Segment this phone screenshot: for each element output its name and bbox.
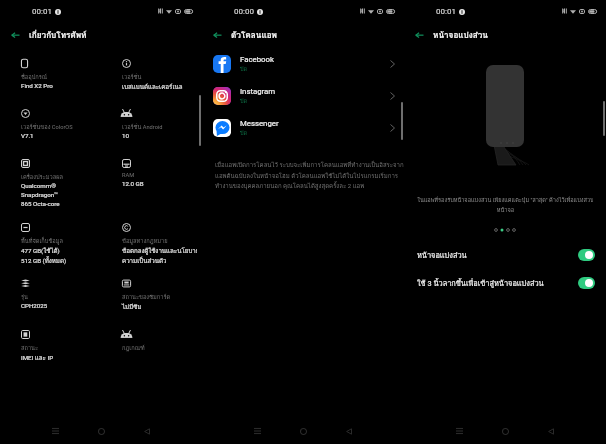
button[interactable]: กฎเกณฑ์ [122, 330, 197, 381]
staticText: RAM [122, 172, 135, 179]
staticText: CPH2025 [21, 302, 48, 309]
button[interactable]: เวอร์ชั่น Android [122, 109, 197, 159]
staticText: ข้อมูลทางกฎหมาย [122, 236, 168, 245]
button[interactable]: ชื่ออุปกรณ์ [21, 59, 98, 109]
staticText: IMEI และ IP [21, 353, 54, 363]
button[interactable]: Back [409, 25, 429, 45]
staticText: ปิด [240, 65, 248, 74]
button[interactable]: เครื่องประมวลผล [21, 159, 98, 223]
staticText: เวอร์ชั่นของ ColorOS [21, 122, 73, 131]
button[interactable]: Back [207, 25, 227, 45]
staticText: เมื่อแอพเปิดการโคลนไว้ ระบบจะเพิ่มการโคล… [215, 160, 404, 190]
button[interactable]: พื้นที่จัดเก็บข้อมูล [21, 223, 98, 279]
staticText: Instagram [240, 87, 276, 96]
staticText: 477 GB(ใช้ได้) 512 GB (ทั้งหมด) [21, 246, 67, 266]
staticText: กฎเกณฑ์ [122, 343, 145, 352]
button[interactable]: เวอร์ชั่น [122, 59, 197, 109]
staticText: ไม่มีซิม [122, 302, 142, 312]
button[interactable]: Messenger [202, 112, 404, 144]
staticText: เวอร์ชั่น Android [122, 122, 163, 131]
button[interactable]: สถานะ [21, 330, 98, 381]
staticText: เกี่ยวกับโทรศัพท์ [29, 29, 87, 42]
staticText: 00:01 [32, 7, 52, 16]
button[interactable]: Home [492, 419, 518, 443]
button[interactable]: หน้าจอแบ่งส่วน [404, 248, 606, 261]
button[interactable]: Recents [244, 419, 270, 443]
staticText: ข้อตกลงผู้ใช้งานและนโยบาย ความเป็นส่วนตั… [122, 246, 197, 265]
button[interactable]: ข้อมูลทางกฎหมาย [122, 223, 197, 279]
button[interactable]: Back [336, 419, 362, 443]
staticText: ปิด [240, 129, 248, 138]
staticText: Messenger [240, 119, 279, 128]
staticText: เวอร์ชั่น [122, 72, 142, 81]
button[interactable]: Instagram [202, 80, 404, 112]
button[interactable]: รุ่น [21, 279, 98, 330]
button[interactable]: Back [134, 419, 160, 443]
staticText: สถานะของซิมการ์ด [122, 292, 171, 301]
staticText: เบสแบนด์และเคอร์เนล [122, 82, 183, 92]
button[interactable]: Back [5, 25, 25, 45]
button[interactable]: Home [290, 419, 316, 443]
staticText: หน้าจอแบ่งส่วน [417, 249, 578, 261]
button[interactable]: Recents [446, 419, 472, 443]
staticText: Facebook [240, 55, 274, 64]
staticText: พื้นที่จัดเก็บข้อมูล [21, 236, 63, 245]
staticText: ปิด [240, 97, 248, 106]
button[interactable]: เวอร์ชั่นของ ColorOS [21, 109, 98, 159]
staticText: 12.0 GB [122, 180, 144, 187]
staticText: 00:01 [436, 7, 456, 16]
staticText: V7.1 [21, 132, 34, 139]
staticText: หน้าจอแบ่งส่วน [433, 29, 488, 42]
staticText: ใช้ 3 นิ้วลากขึ้นเพื่อเข้าสู่หน้าจอแบ่งส… [417, 277, 578, 289]
staticText: Qualcomm® Snapdragon™ 865 Octa-core [21, 182, 60, 208]
button[interactable]: RAM [122, 159, 197, 223]
button[interactable]: Recents [42, 419, 68, 443]
staticText: สถานะ [21, 343, 39, 352]
staticText: ชื่ออุปกรณ์ [21, 72, 48, 81]
staticText: Find X2 Pro [21, 82, 53, 89]
staticText: เครื่องประมวลผล [21, 172, 63, 181]
staticText: 10 [122, 132, 129, 139]
staticText: ตัวโคลนแอพ [231, 29, 277, 42]
button[interactable]: Facebook [202, 48, 404, 80]
button[interactable]: Home [88, 419, 114, 443]
staticText: 00:00 [234, 7, 254, 16]
staticText: ในแอพที่รองรับหน้าจอแบ่งส่วน เพียงแค่แตะ… [417, 196, 593, 214]
button[interactable]: Back [538, 419, 564, 443]
button[interactable]: ใช้ 3 นิ้วลากขึ้นเพื่อเข้าสู่หน้าจอแบ่งส… [404, 276, 606, 289]
staticText: รุ่น [21, 292, 28, 301]
button[interactable]: สถานะของซิมการ์ด [122, 279, 197, 330]
